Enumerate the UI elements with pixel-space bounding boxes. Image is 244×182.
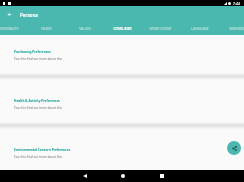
staticText: WORD COUNT [149,27,172,31]
button[interactable]: Back [3,8,16,21]
button[interactable]: WORD COUNT [141,23,180,35]
button[interactable]: LANGUAGE [180,23,219,35]
button[interactable]: Home [117,170,128,181]
button[interactable]: VALUES [65,23,104,35]
button[interactable]: Purchasing Preferences [0,35,244,76]
staticText: Persona [20,12,38,18]
button[interactable]: PERSONALITY [0,23,27,35]
button[interactable]: NEEDS [27,23,66,35]
staticText: Health & Activity Preferences [14,99,60,103]
staticText: LANGUAGE [191,27,209,31]
staticText: Touch to find out more about this [14,57,62,61]
staticText: Touch to find out more about this [14,155,62,159]
staticText: Purchasing Preferences [14,50,51,54]
staticText: Touch to find out more about this [14,106,62,110]
button[interactable]: CONSUMER [103,23,142,35]
button[interactable]: Environmental Concern Preferences [0,128,244,173]
button[interactable]: Recents [156,170,167,181]
staticText: NEEDS [41,27,52,31]
button[interactable]: Share [227,141,241,155]
staticText: 7:44 [233,1,241,6]
button[interactable]: Health & Activity Preferences [0,79,244,124]
staticText: WARNINGS [229,27,244,31]
staticText: PERSONALITY [0,27,19,31]
staticText: CONSUMER [113,27,132,31]
button[interactable]: WARNINGS [218,23,244,35]
button[interactable]: Back [79,170,90,181]
staticText: VALUES [79,27,91,31]
staticText: Environmental Concern Preferences [14,148,71,152]
